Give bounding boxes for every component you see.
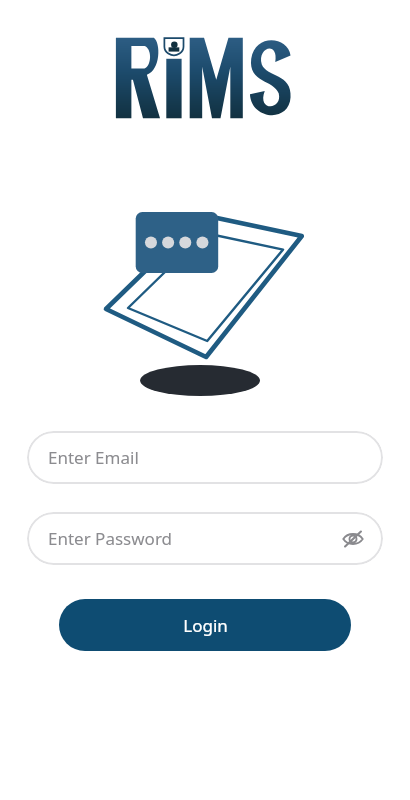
staticText: Enter Email — [48, 446, 139, 469]
button[interactable]: Enter Password — [27, 512, 383, 565]
button[interactable]: Show password — [335, 521, 371, 557]
button[interactable]: Login — [59, 599, 351, 651]
button[interactable]: Enter Email — [27, 431, 383, 484]
staticText: Login — [183, 614, 228, 637]
staticText: Enter Password — [48, 527, 173, 550]
